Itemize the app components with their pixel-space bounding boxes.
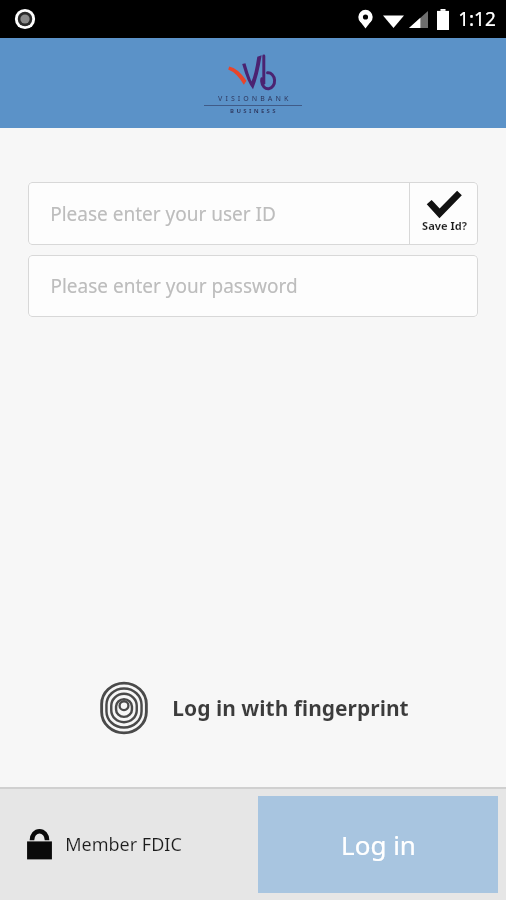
button[interactable]: Please enter your user ID (28, 183, 409, 244)
staticText: 1:12 (458, 6, 496, 32)
button[interactable]: Log in (258, 796, 498, 893)
staticText: V I S I O N B A N K (218, 94, 289, 104)
button[interactable]: Save Id (410, 183, 478, 244)
staticText: Log in (341, 827, 416, 862)
staticText: Member FDIC (65, 832, 182, 857)
button[interactable]: Log in with fingerprint (0, 673, 506, 743)
staticText: B U S I N E S S (230, 107, 276, 115)
staticText: Please enter your password (50, 273, 298, 299)
staticText: Please enter your user ID (50, 201, 276, 227)
staticText: Log in with fingerprint (172, 694, 409, 723)
button[interactable]: Member FDIC (26, 829, 182, 860)
button[interactable]: Please enter your password (28, 255, 478, 317)
staticText: Save Id? (422, 218, 467, 233)
